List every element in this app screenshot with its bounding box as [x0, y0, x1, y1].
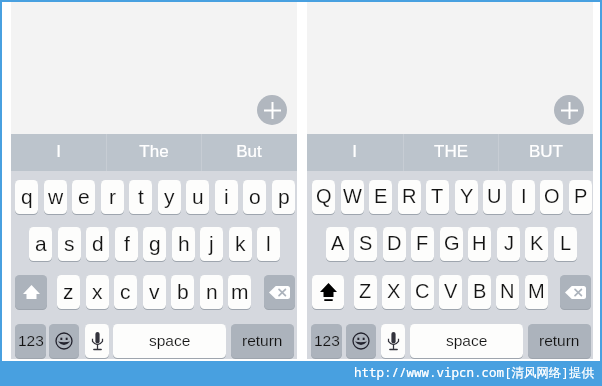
- staticText: But: [236, 142, 262, 161]
- staticText: H: [472, 232, 487, 254]
- button[interactable]: q: [15, 180, 38, 214]
- button[interactable]: J: [497, 227, 520, 261]
- button[interactable]: T: [426, 180, 449, 214]
- button[interactable]: space: [113, 324, 226, 358]
- button[interactable]: U: [483, 180, 506, 214]
- staticText: x: [92, 280, 103, 303]
- button[interactable]: E: [369, 180, 392, 214]
- button[interactable]: h: [172, 227, 195, 261]
- staticText: t: [138, 185, 144, 208]
- button[interactable]: space: [410, 324, 523, 358]
- button[interactable]: i: [215, 180, 238, 214]
- button[interactable]: Add: [554, 95, 584, 125]
- button[interactable]: f: [115, 227, 138, 261]
- staticText: I: [521, 185, 527, 207]
- button[interactable]: O: [540, 180, 563, 214]
- staticText: o: [249, 185, 261, 208]
- staticText: m: [231, 280, 249, 303]
- button[interactable]: R: [398, 180, 421, 214]
- button[interactable]: The: [106, 134, 201, 171]
- button[interactable]: W: [341, 180, 364, 214]
- staticText: M: [528, 280, 545, 302]
- button[interactable]: 123: [15, 324, 46, 358]
- staticText: e: [78, 185, 90, 208]
- staticText: Q: [316, 185, 332, 207]
- button[interactable]: t: [129, 180, 152, 214]
- staticText: Z: [359, 280, 372, 302]
- button[interactable]: m: [228, 275, 251, 309]
- button[interactable]: A: [326, 227, 349, 261]
- button[interactable]: l: [257, 227, 280, 261]
- button[interactable]: 123: [311, 324, 342, 358]
- button[interactable]: g: [143, 227, 166, 261]
- staticText: 123: [314, 332, 340, 349]
- button[interactable]: k: [229, 227, 252, 261]
- button[interactable]: B: [468, 275, 491, 309]
- button[interactable]: L: [554, 227, 577, 261]
- button[interactable]: X: [382, 275, 405, 309]
- button[interactable]: S: [354, 227, 377, 261]
- button[interactable]: M: [525, 275, 548, 309]
- button[interactable]: p: [272, 180, 295, 214]
- button[interactable]: Q: [312, 180, 335, 214]
- staticText: q: [21, 185, 33, 208]
- button[interactable]: e: [72, 180, 95, 214]
- staticText: b: [177, 280, 189, 303]
- button[interactable]: But: [201, 134, 296, 171]
- button[interactable]: a: [29, 227, 52, 261]
- button[interactable]: d: [86, 227, 109, 261]
- button[interactable]: N: [496, 275, 519, 309]
- button[interactable]: Emoji: [346, 324, 376, 358]
- button[interactable]: Add: [257, 95, 287, 125]
- staticText: R: [402, 185, 417, 207]
- button[interactable]: s: [58, 227, 81, 261]
- staticText: space: [446, 332, 488, 349]
- button[interactable]: Emoji: [49, 324, 79, 358]
- button[interactable]: Dictation: [85, 324, 109, 358]
- button[interactable]: return: [528, 324, 591, 358]
- button[interactable]: F: [411, 227, 434, 261]
- staticText: r: [109, 185, 116, 208]
- staticText: 123: [18, 332, 44, 349]
- button[interactable]: y: [158, 180, 181, 214]
- button[interactable]: Delete: [560, 275, 591, 309]
- button[interactable]: THE: [403, 134, 498, 171]
- staticText: return: [242, 332, 283, 349]
- button[interactable]: G: [440, 227, 463, 261]
- staticText: http://www.vipcn.com[清风网络]提供: [0, 364, 594, 384]
- button[interactable]: return: [231, 324, 294, 358]
- staticText: The: [139, 142, 169, 161]
- staticText: z: [63, 280, 74, 303]
- button[interactable]: Delete: [264, 275, 295, 309]
- button[interactable]: Y: [455, 180, 478, 214]
- button[interactable]: D: [383, 227, 406, 261]
- staticText: return: [539, 332, 580, 349]
- button[interactable]: o: [243, 180, 266, 214]
- staticText: f: [124, 232, 130, 255]
- button[interactable]: u: [186, 180, 209, 214]
- button[interactable]: BUT: [498, 134, 593, 171]
- button[interactable]: Shift: [15, 275, 47, 309]
- button[interactable]: j: [200, 227, 223, 261]
- button[interactable]: Shift: [312, 275, 344, 309]
- staticText: h: [178, 232, 190, 255]
- button[interactable]: K: [525, 227, 548, 261]
- button[interactable]: I: [512, 180, 535, 214]
- button[interactable]: n: [200, 275, 223, 309]
- button[interactable]: Dictation: [381, 324, 405, 358]
- button[interactable]: H: [468, 227, 491, 261]
- button[interactable]: I: [11, 134, 106, 171]
- button[interactable]: x: [86, 275, 109, 309]
- button[interactable]: Z: [354, 275, 377, 309]
- button[interactable]: w: [44, 180, 67, 214]
- button[interactable]: r: [101, 180, 124, 214]
- button[interactable]: z: [57, 275, 80, 309]
- staticText: C: [415, 280, 430, 302]
- button[interactable]: P: [569, 180, 592, 214]
- button[interactable]: C: [411, 275, 434, 309]
- button[interactable]: c: [114, 275, 137, 309]
- button[interactable]: v: [143, 275, 166, 309]
- button[interactable]: V: [439, 275, 462, 309]
- button[interactable]: b: [171, 275, 194, 309]
- button[interactable]: I: [307, 134, 402, 171]
